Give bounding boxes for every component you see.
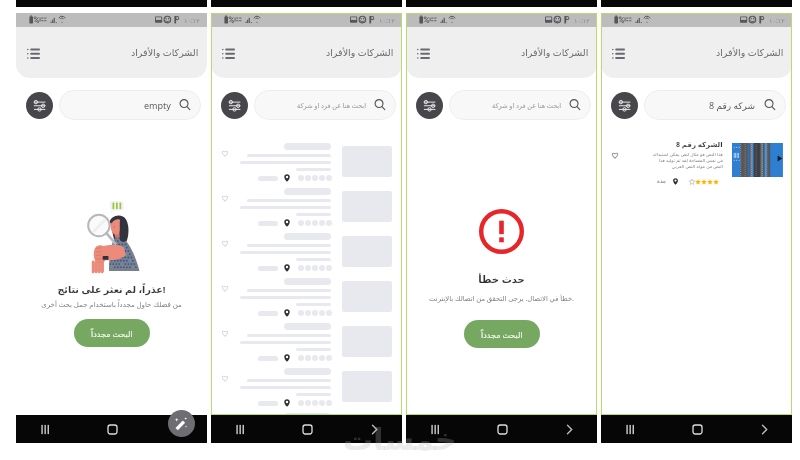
button[interactable]: Recents	[229, 419, 249, 439]
button[interactable]: Filter	[26, 92, 53, 119]
button[interactable]: البحث مجدداً	[464, 320, 540, 348]
button[interactable]: Back	[559, 419, 579, 439]
button[interactable]: Back	[169, 419, 189, 439]
button[interactable]: Filter	[221, 92, 248, 119]
button[interactable]: Filter	[416, 92, 443, 119]
button[interactable]: Recents	[34, 419, 54, 439]
button[interactable]: Menu	[607, 42, 629, 64]
button[interactable]: Home	[492, 419, 512, 439]
staticText: من فضلك حاول مجدداً باستخدام جمل بحث أخر…	[16, 300, 207, 310]
button[interactable]: Home	[297, 419, 317, 439]
button[interactable]: ابحث هنا عن فرد او شركة	[254, 90, 396, 120]
staticText: الشركات والأفراد	[716, 46, 784, 59]
button[interactable]: Home	[102, 419, 122, 439]
button[interactable]: Recents	[424, 419, 444, 439]
staticText: الشركات والأفراد	[131, 46, 199, 59]
button[interactable]: ابحث هنا عن فرد او شركة	[449, 90, 591, 120]
button[interactable]: Menu	[22, 42, 44, 64]
button[interactable]: Back	[364, 419, 384, 439]
staticText: ١٠:١٢	[379, 16, 395, 25]
staticText: empty	[144, 99, 171, 111]
staticText: خمسات	[343, 422, 457, 457]
staticText: ابحث هنا عن فرد او شركة	[297, 101, 366, 110]
staticText: هذا النص هو مثال لنص يمكن استبداله في نف…	[651, 151, 723, 169]
button[interactable]: Filter	[611, 92, 638, 119]
button[interactable]: Menu	[412, 42, 434, 64]
staticText: ١٠:١٢	[184, 16, 200, 25]
staticText: الشركات والأفراد	[326, 46, 394, 59]
button[interactable]: Home	[687, 419, 707, 439]
button[interactable]: Menu	[217, 42, 239, 64]
staticText: خطأ في الاتصال. يرجى التحقق من اتصالك با…	[406, 294, 597, 303]
button[interactable]: Back	[754, 419, 774, 439]
button[interactable]: empty	[59, 90, 201, 120]
button[interactable]: البحث مجدداً	[74, 319, 150, 347]
staticText: ١٠:١٢	[574, 16, 590, 25]
staticText: شركه رقم 8	[709, 99, 756, 111]
staticText: الشركه رقم 8	[676, 140, 723, 150]
staticText: عذراً، لم نعثر على نتائج!	[16, 283, 207, 296]
staticText: ابحث هنا عن فرد او شركة	[492, 101, 561, 110]
button[interactable]: Recents	[619, 419, 639, 439]
button[interactable]: Magic edit	[168, 410, 195, 437]
staticText: البحث مجدداً	[91, 328, 133, 339]
staticText: حدث خطأ	[406, 272, 597, 286]
staticText: الشركات والأفراد	[521, 46, 589, 59]
staticText: جدة	[657, 178, 667, 185]
button[interactable]: شركه رقم 8	[644, 90, 786, 120]
staticText: ١٠:١٢	[769, 16, 785, 25]
button[interactable]: الشركه رقم 8	[601, 138, 792, 188]
staticText: البحث مجدداً	[481, 329, 523, 340]
